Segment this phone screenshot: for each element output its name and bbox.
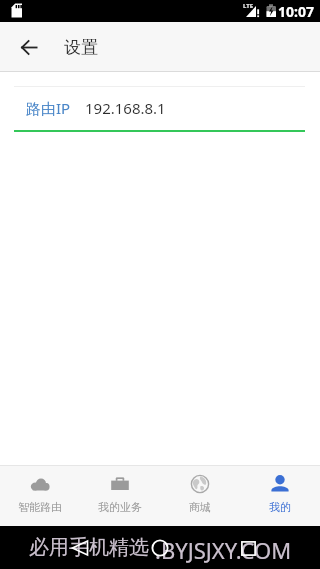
staticText: 10:07 (278, 2, 314, 21)
staticText: 设置 (64, 37, 98, 58)
staticText: 必用手机精选 (29, 535, 149, 560)
staticText: 商城 (189, 500, 211, 514)
staticText: 192.168.8.1 (85, 98, 166, 118)
button[interactable]: Recents (228, 528, 268, 568)
button[interactable]: Back (60, 528, 100, 568)
staticText: 我的业务 (98, 500, 142, 514)
button[interactable]: 商城 (160, 466, 240, 526)
button[interactable]: 智能路由 (0, 466, 80, 526)
staticText: 路由IP (26, 98, 71, 118)
button[interactable]: Back (13, 31, 45, 63)
button[interactable]: 路由IP (0, 87, 320, 129)
button[interactable]: 我的业务 (80, 466, 160, 526)
button[interactable]: 我的 (240, 466, 320, 526)
button[interactable]: Home (140, 528, 180, 568)
staticText: LTE (243, 2, 254, 10)
staticText: 我的 (269, 500, 291, 514)
staticText: 智能路由 (18, 500, 62, 514)
staticText: .BYJSJXY.COM (155, 535, 292, 565)
